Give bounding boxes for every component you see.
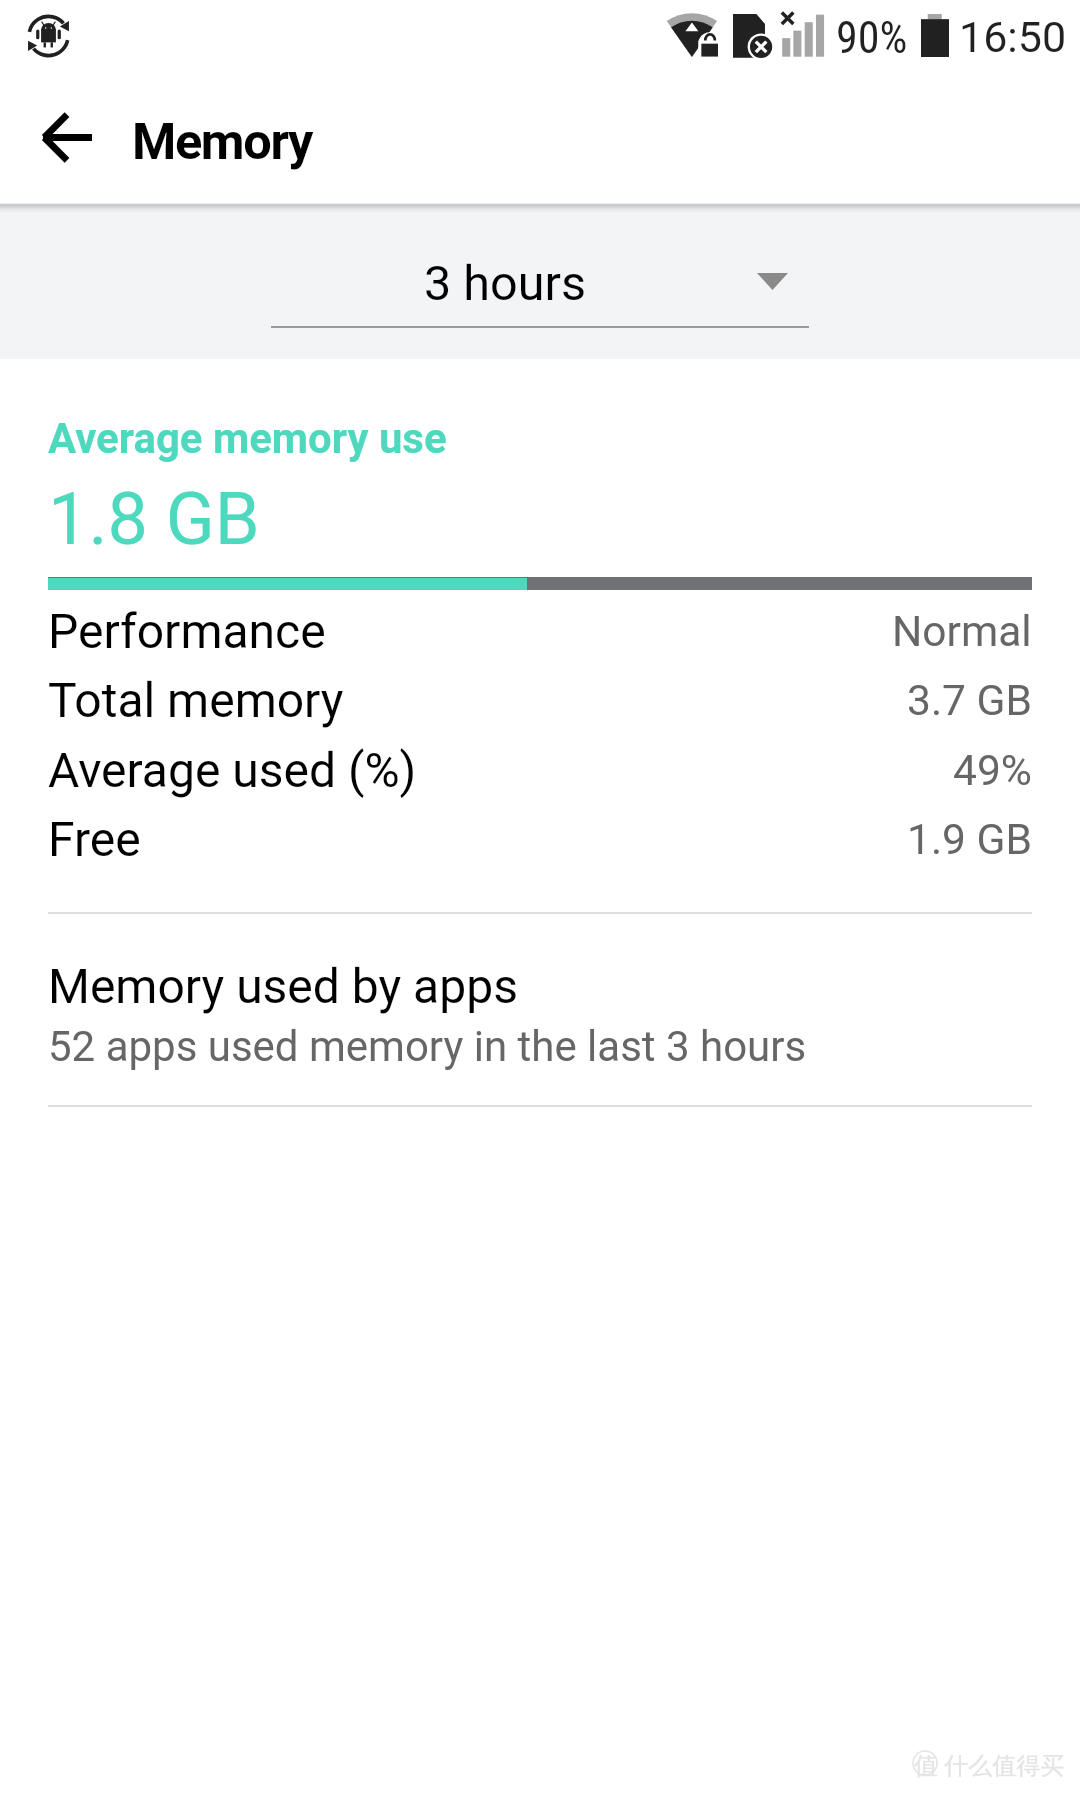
staticText: 3 hours: [241, 255, 769, 312]
staticText: Memory: [132, 112, 312, 171]
staticText: 3.7 GB: [907, 676, 1032, 726]
staticText: 1.8 GB: [48, 477, 260, 561]
button[interactable]: Performance: [48, 591, 1032, 660]
staticText: Memory used by apps: [48, 958, 518, 1014]
button[interactable]: Total memory: [48, 660, 1032, 729]
staticText: 1.9 GB: [907, 815, 1032, 865]
staticText: Total memory: [48, 672, 344, 728]
staticText: Free: [48, 811, 141, 867]
button[interactable]: Free: [48, 799, 1032, 868]
staticText: 16:50: [959, 12, 1067, 62]
button[interactable]: Navigate up: [22, 92, 112, 182]
button[interactable]: Average used (%): [48, 730, 1032, 799]
staticText: 52 apps used memory in the last 3 hours: [48, 1022, 807, 1071]
staticText: Average memory use: [48, 414, 447, 463]
staticText: Average used (%): [48, 742, 417, 798]
staticText: Performance: [48, 603, 326, 659]
staticText: Normal: [892, 607, 1032, 657]
button[interactable]: Memory used by apps: [0, 932, 1080, 1117]
staticText: 值 什么值得买: [914, 1748, 1065, 1781]
other: Syncing: [27, 14, 70, 58]
staticText: 49%: [953, 746, 1032, 796]
button[interactable]: 3 hours: [271, 227, 809, 328]
staticText: 90%: [836, 12, 908, 64]
